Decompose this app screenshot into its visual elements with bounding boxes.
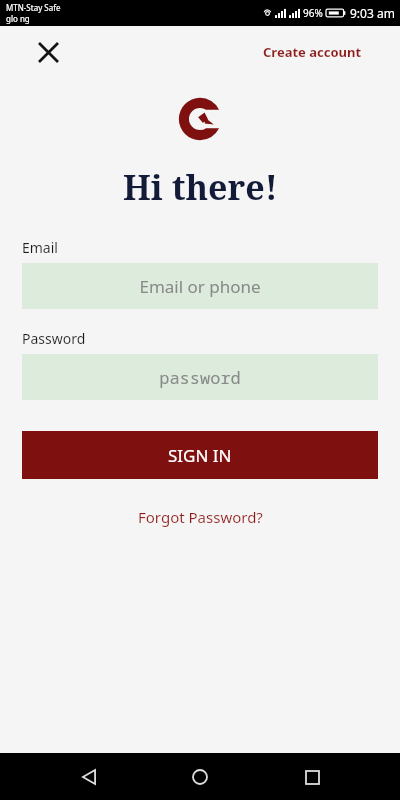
button[interactable]: SIGN IN xyxy=(22,431,378,479)
button[interactable]: Forgot Password? xyxy=(124,501,277,533)
button[interactable]: Recent apps xyxy=(289,754,335,800)
staticText: 9:03 am xyxy=(350,5,395,21)
button[interactable]: Home xyxy=(177,754,223,800)
staticText: Email xyxy=(22,238,58,257)
staticText: password xyxy=(159,366,241,389)
button[interactable]: Close xyxy=(30,34,66,70)
button[interactable]: Email or phone xyxy=(22,263,378,309)
staticText: SIGN IN xyxy=(168,444,232,467)
staticText: Email or phone xyxy=(139,275,261,298)
button[interactable]: Create account xyxy=(259,37,366,67)
staticText: Forgot Password? xyxy=(138,507,263,527)
staticText: 96% xyxy=(303,6,323,20)
staticText: Password xyxy=(22,329,86,348)
staticText: Hi there! xyxy=(123,164,278,210)
staticText: glo ng xyxy=(6,13,30,24)
staticText: Create account xyxy=(263,43,362,61)
staticText: MTN-Stay Safe xyxy=(6,2,61,13)
button[interactable]: Back xyxy=(66,754,112,800)
button[interactable]: password xyxy=(22,354,378,400)
